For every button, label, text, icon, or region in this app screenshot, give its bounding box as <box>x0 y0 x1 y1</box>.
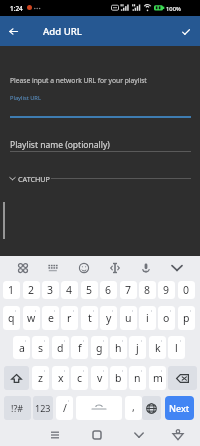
button[interactable]: Backspace <box>168 366 197 390</box>
button[interactable]: n <box>129 366 146 390</box>
staticText: m <box>153 371 163 385</box>
staticText: g <box>96 341 103 355</box>
staticText: Please input a network URL for your play… <box>10 76 147 85</box>
button[interactable]: Recents <box>45 427 65 443</box>
button[interactable]: !?# <box>4 396 31 420</box>
button[interactable]: Voice input <box>138 260 154 276</box>
staticText: c <box>77 371 83 385</box>
button[interactable]: 1 <box>3 281 20 299</box>
staticText: o <box>163 311 170 325</box>
button[interactable]: 3 <box>42 281 59 299</box>
staticText: f <box>78 341 82 355</box>
button[interactable]: t <box>81 306 98 330</box>
staticText: w <box>27 311 36 325</box>
staticText: v <box>97 371 103 385</box>
button[interactable]: Confirm <box>175 21 196 42</box>
button[interactable]: CATCHUP <box>9 172 191 185</box>
staticText: 5 <box>86 283 93 297</box>
staticText: l <box>175 341 178 355</box>
button[interactable]: p <box>178 306 195 330</box>
button[interactable]: 6 <box>100 281 117 299</box>
button[interactable]: Home <box>87 427 107 443</box>
staticText: !?# <box>11 402 24 414</box>
button[interactable]: g <box>91 336 108 359</box>
button[interactable]: / <box>56 396 73 420</box>
button[interactable]: 8 <box>139 281 156 299</box>
button[interactable]: z <box>32 366 49 390</box>
staticText: 123 <box>35 402 51 414</box>
button[interactable]: 123 <box>33 396 53 420</box>
staticText: 1:24 <box>10 4 23 13</box>
button[interactable]: Back <box>3 21 24 42</box>
button[interactable]: 0 <box>178 281 195 299</box>
button[interactable]: l <box>168 336 185 359</box>
button[interactable]: 7 <box>120 281 137 299</box>
staticText: e <box>48 311 54 325</box>
staticText: Add URL <box>43 25 82 38</box>
staticText: i <box>146 311 149 325</box>
staticText: b <box>115 371 122 385</box>
button[interactable]: Apps <box>15 260 31 276</box>
button[interactable]: j <box>129 336 146 359</box>
staticText: 0 <box>183 283 190 297</box>
staticText: j <box>136 341 139 355</box>
staticText: Next <box>169 402 190 414</box>
button[interactable]: f <box>71 336 88 359</box>
button[interactable]: m <box>149 366 166 390</box>
staticText: 3 <box>47 283 54 297</box>
button[interactable]: Back <box>129 427 149 443</box>
button[interactable]: Collapse keyboard <box>169 260 185 276</box>
staticText: 4 <box>66 283 73 297</box>
button[interactable]: v <box>91 366 108 390</box>
button[interactable]: , <box>125 396 142 420</box>
staticText: 9 <box>163 283 170 297</box>
button[interactable]: q <box>3 306 20 330</box>
button[interactable]: Move cursor <box>107 260 123 276</box>
staticText: 100% <box>166 5 181 13</box>
button[interactable]: Emoji <box>76 260 92 276</box>
button[interactable]: 2 <box>23 281 40 299</box>
button[interactable]: Switch keyboard <box>168 427 188 443</box>
staticText: 8 <box>144 283 151 297</box>
button[interactable]: s <box>32 336 49 359</box>
staticText: / <box>63 401 67 415</box>
button[interactable]: Shift <box>4 366 29 390</box>
button[interactable]: w <box>23 306 40 330</box>
staticText: 2 <box>28 283 35 297</box>
button[interactable]: k <box>149 336 166 359</box>
button[interactable]: b <box>110 366 127 390</box>
staticText: d <box>57 341 64 355</box>
staticText: z <box>38 371 43 385</box>
button[interactable]: y <box>100 306 117 330</box>
staticText: s <box>38 341 44 355</box>
button[interactable]: Clipboard <box>45 260 61 276</box>
button[interactable]: 4 <box>61 281 78 299</box>
button[interactable]: h <box>110 336 127 359</box>
staticText: Playlist name (optionally) <box>10 139 110 151</box>
button[interactable]: c <box>71 366 88 390</box>
button[interactable]: e <box>42 306 59 330</box>
staticText: x <box>58 371 64 385</box>
staticText: 7 <box>125 283 132 297</box>
staticText: , <box>132 400 135 414</box>
button[interactable]: 5 <box>81 281 98 299</box>
button[interactable]: d <box>52 336 69 359</box>
button[interactable]: a <box>13 336 30 359</box>
staticText: a <box>19 341 25 355</box>
button[interactable]: Next <box>165 396 194 420</box>
button[interactable]: Change language <box>142 396 161 420</box>
staticText: t <box>88 311 92 325</box>
button[interactable]: Space <box>76 396 122 420</box>
staticText: y <box>106 311 112 325</box>
staticText: k <box>155 341 161 355</box>
button[interactable]: i <box>139 306 156 330</box>
button[interactable]: x <box>52 366 69 390</box>
button[interactable]: u <box>120 306 137 330</box>
button[interactable]: o <box>158 306 175 330</box>
staticText: h <box>115 341 122 355</box>
staticText: 1 <box>8 283 15 297</box>
button[interactable]: r <box>61 306 78 330</box>
staticText: CATCHUP <box>18 174 50 184</box>
button[interactable]: 9 <box>158 281 175 299</box>
staticText: 6 <box>105 283 112 297</box>
